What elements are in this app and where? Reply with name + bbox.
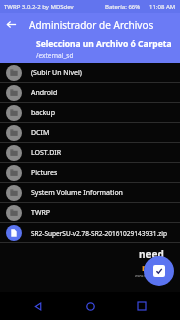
button[interactable]: Android <box>0 83 180 103</box>
staticText: Pictures <box>31 168 58 178</box>
staticText: Selecciona un Archivo ó Carpeta <box>36 38 172 50</box>
staticText: backup <box>31 108 55 118</box>
staticText: need <box>139 247 164 261</box>
staticText: 11:08 AM <box>149 3 176 11</box>
button[interactable]: SR2-SuperSU-v2.78-SR2-20161029143931.zip <box>0 223 180 243</box>
staticText: DCIM <box>31 128 50 138</box>
staticText: TWRP <box>31 208 50 218</box>
button[interactable]: DCIM <box>0 123 180 143</box>
button[interactable]: Back <box>0 13 23 36</box>
staticText: SR2-SuperSU-v2.78-SR2-20161029143931.zip <box>31 229 168 238</box>
button[interactable]: (Subir Un Nivel) <box>0 63 180 83</box>
button[interactable]: Recent apps <box>128 292 156 320</box>
staticText: rom <box>142 261 161 273</box>
staticText: Android <box>31 88 58 98</box>
staticText: Administrador de Archivos <box>29 18 154 32</box>
staticText: /external_sd <box>36 51 74 60</box>
button[interactable]: Home <box>76 292 104 320</box>
button[interactable]: System Volume Information <box>0 183 180 203</box>
button[interactable]: Pictures <box>0 163 180 183</box>
staticText: System Volume Information <box>31 188 123 198</box>
staticText: (Subir Un Nivel) <box>31 68 82 78</box>
staticText: Batería: 66% <box>105 3 141 11</box>
button[interactable]: Back <box>24 292 52 320</box>
button[interactable]: Confirm selection <box>144 256 174 286</box>
staticText: TWRP 3.0.2-2 by MDSdev <box>4 3 74 11</box>
button[interactable]: LOST.DIR <box>0 143 180 163</box>
staticText: www.needrom.com <box>135 273 168 278</box>
button[interactable]: backup <box>0 103 180 123</box>
staticText: LOST.DIR <box>31 148 62 158</box>
button[interactable]: TWRP <box>0 203 180 223</box>
